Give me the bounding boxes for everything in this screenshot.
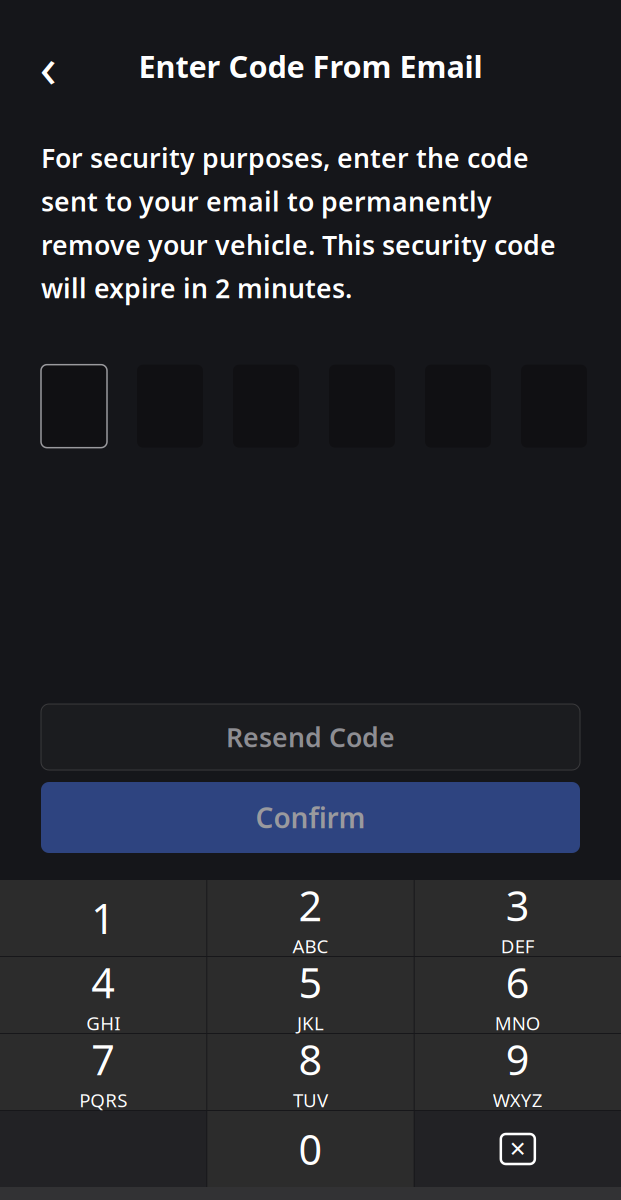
- staticText: 4: [91, 955, 115, 1010]
- staticText: Enter Code From Email: [138, 46, 482, 86]
- staticText: 2: [298, 878, 322, 933]
- button[interactable]: 1: [0, 880, 206, 956]
- staticText: 3: [506, 878, 530, 933]
- staticText: 6: [506, 955, 530, 1010]
- button[interactable]: 0: [207, 1111, 414, 1187]
- button[interactable]: Delete: [415, 1111, 621, 1187]
- staticText: 5: [298, 955, 322, 1010]
- button[interactable]: 3: [415, 880, 621, 956]
- staticText: MNO: [495, 1010, 541, 1035]
- staticText: ‹: [39, 29, 56, 103]
- staticText: 1: [91, 891, 115, 945]
- staticText: WXYZ: [493, 1087, 543, 1112]
- staticText: 0: [298, 1122, 322, 1176]
- staticText: JKL: [297, 1010, 324, 1035]
- button[interactable]: Back: [26, 44, 70, 88]
- button[interactable]: 8: [207, 1034, 414, 1110]
- button[interactable]: 4: [0, 957, 206, 1033]
- staticText: 8: [298, 1032, 322, 1087]
- button[interactable]: Confirm: [41, 782, 580, 853]
- button[interactable]: 2: [207, 880, 414, 956]
- button[interactable]: 9: [415, 1034, 621, 1110]
- staticText: Confirm: [255, 799, 365, 836]
- staticText: For security purposes, enter the code se…: [41, 140, 556, 306]
- button[interactable]: 5: [207, 957, 414, 1033]
- staticText: Resend Code: [226, 719, 395, 755]
- button[interactable]: 6: [415, 957, 621, 1033]
- staticText: GHI: [86, 1010, 120, 1035]
- staticText: 7: [91, 1032, 115, 1087]
- staticText: 9: [506, 1032, 530, 1087]
- button[interactable]: Resend Code: [41, 704, 580, 770]
- button[interactable]: 7: [0, 1034, 206, 1110]
- staticText: ✕: [509, 1137, 527, 1161]
- staticText: ABC: [292, 933, 328, 958]
- staticText: DEF: [501, 933, 535, 958]
- staticText: PQRS: [79, 1087, 127, 1112]
- staticText: TUV: [293, 1087, 328, 1112]
